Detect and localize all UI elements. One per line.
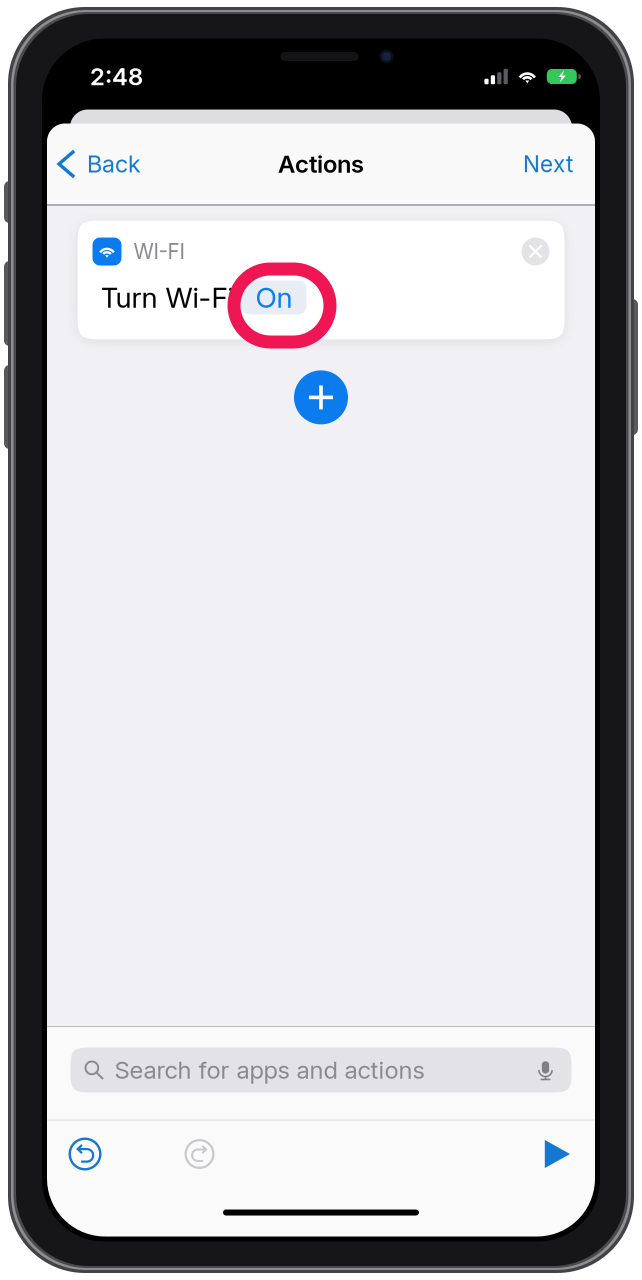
staticText: Back <box>87 150 141 178</box>
button[interactable]: Back <box>47 138 141 190</box>
staticText: Next <box>523 150 573 178</box>
button[interactable]: Run shortcut <box>536 1131 579 1177</box>
staticText: Turn Wi-Fi <box>100 280 233 314</box>
button[interactable]: Undo <box>59 1128 111 1180</box>
staticText: Actions <box>278 149 364 178</box>
button[interactable]: Search for apps and actions <box>70 1047 571 1092</box>
button[interactable]: On <box>241 280 306 314</box>
staticText: 2:48 <box>90 62 143 91</box>
button[interactable]: Add action <box>294 370 348 424</box>
staticText: WI-FI <box>133 239 184 264</box>
button[interactable]: Remove action <box>521 237 549 265</box>
staticText: On <box>255 280 292 314</box>
button[interactable]: Next <box>523 138 595 190</box>
button[interactable]: Redo <box>175 1129 224 1178</box>
staticText: Search for apps and actions <box>114 1055 424 1084</box>
